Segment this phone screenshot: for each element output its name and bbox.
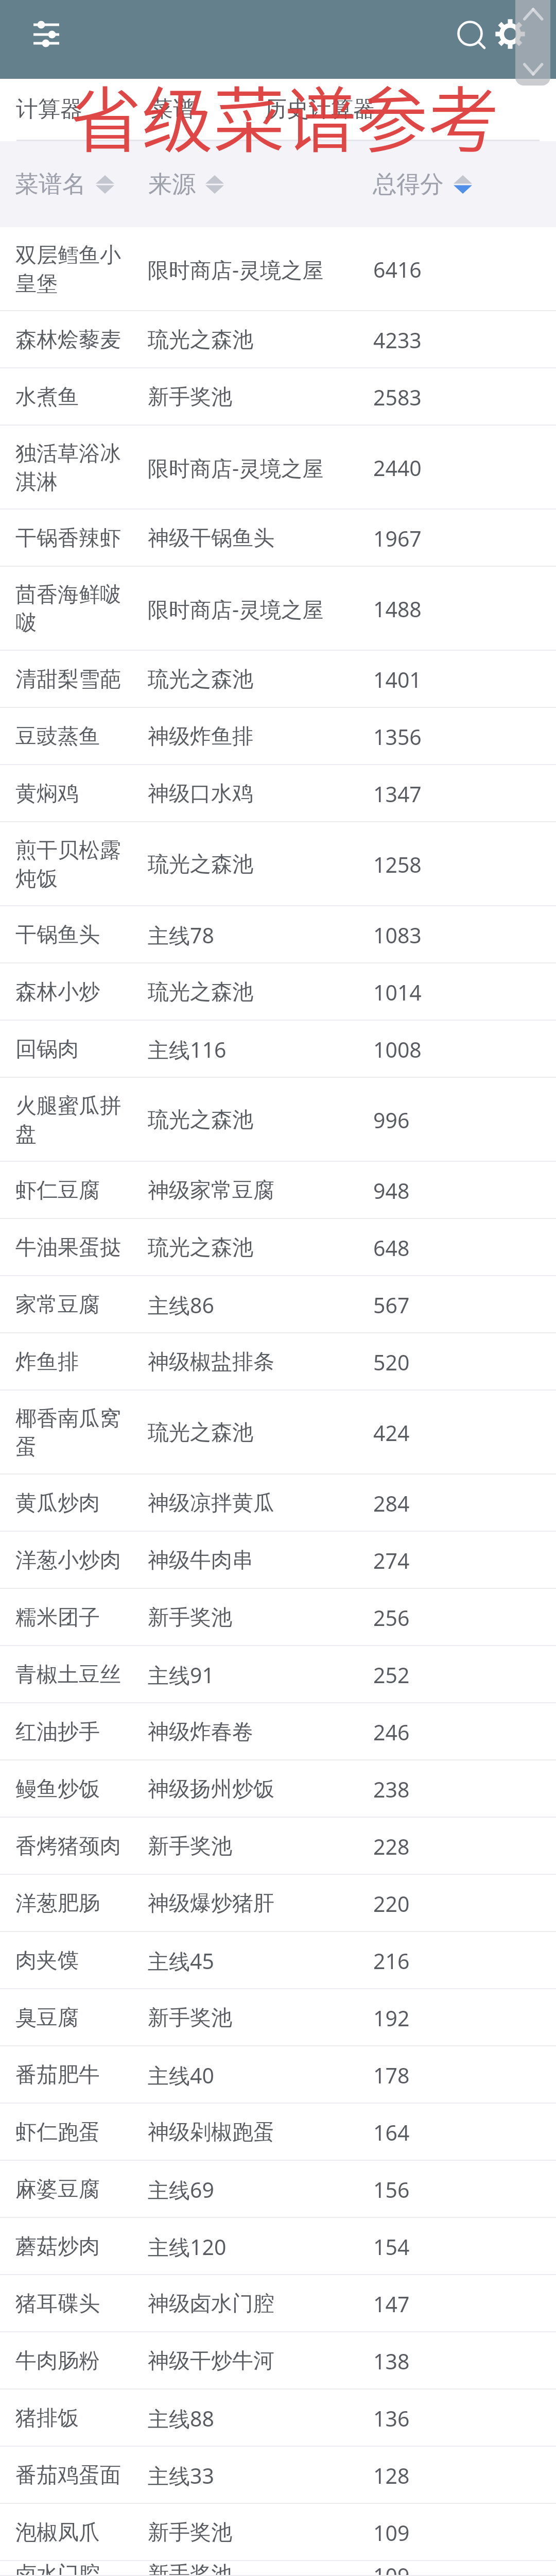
staticText: 炸鱼排 (15, 1349, 79, 1376)
staticText: 总得分 (373, 170, 444, 199)
staticText: 主线45 (148, 1946, 214, 1975)
staticText: 192 (373, 2004, 410, 2032)
staticText: 109 (373, 2561, 410, 2576)
staticText: 豆豉蒸鱼 (15, 723, 100, 750)
staticText: 限时商店-灵境之屋 (148, 595, 324, 623)
button[interactable]: 蘑菇炒肉 (0, 2218, 556, 2275)
staticText: 椰香南瓜窝蛋 (15, 1405, 135, 1460)
button[interactable]: 洋葱肥肠 (0, 1875, 556, 1932)
button[interactable]: 红油抄手 (0, 1703, 556, 1760)
button[interactable]: 回锅肉 (0, 1021, 556, 1078)
staticText: 996 (373, 1106, 410, 1134)
staticText: 948 (373, 1176, 410, 1205)
staticText: 164 (373, 2118, 410, 2147)
button[interactable]: 豆豉蒸鱼 (0, 708, 556, 765)
button[interactable]: 茴香海鲜啵啵 (0, 567, 556, 651)
button[interactable]: 炸鱼排 (0, 1333, 556, 1391)
button[interactable]: 煎干贝松露炖饭 (0, 822, 556, 906)
button[interactable]: 清甜梨雪葩 (0, 651, 556, 708)
button[interactable]: 菜谱 (151, 95, 195, 123)
button[interactable]: 番茄鸡蛋面 (0, 2447, 556, 2504)
button[interactable]: 臭豆腐 (0, 1989, 556, 2046)
staticText: 神级爆炒猪肝 (148, 1890, 274, 1917)
button[interactable]: 独活草浴冰淇淋 (0, 426, 556, 510)
staticText: 糯米团子 (15, 1604, 100, 1631)
staticText: 回锅肉 (15, 1036, 79, 1063)
button[interactable]: 菜谱名 (15, 170, 114, 199)
staticText: 计算器 (16, 95, 82, 123)
staticText: 神级卤水门腔 (148, 2291, 274, 2317)
button[interactable]: 泡椒凤爪 (0, 2504, 556, 2561)
button[interactable]: 洋葱小炒肉 (0, 1532, 556, 1589)
button[interactable]: 水煮鱼 (0, 368, 556, 426)
button[interactable]: 牛肉肠粉 (0, 2332, 556, 2389)
staticText: 神级口水鸡 (148, 781, 253, 807)
staticText: 家常豆腐 (15, 1292, 100, 1318)
staticText: 洋葱小炒肉 (15, 1547, 121, 1574)
staticText: 泡椒凤爪 (15, 2519, 100, 2546)
button[interactable]: Filter (21, 8, 72, 60)
button[interactable]: 猪排饭 (0, 2389, 556, 2447)
button[interactable]: 森林烩藜麦 (0, 311, 556, 368)
button[interactable]: 番茄肥牛 (0, 2046, 556, 2104)
button[interactable]: 虾仁跑蛋 (0, 2104, 556, 2161)
staticText: 神级炸春卷 (148, 1719, 253, 1745)
button[interactable]: 猪耳碟头 (0, 2275, 556, 2332)
button[interactable]: 香烤猪颈肉 (0, 1818, 556, 1875)
staticText: 2440 (373, 453, 422, 482)
staticText: 神级家常豆腐 (148, 1177, 274, 1204)
staticText: 洋葱肥肠 (15, 1890, 100, 1917)
button[interactable]: Settings (484, 8, 536, 60)
button[interactable]: 鳗鱼炒饭 (0, 1760, 556, 1818)
button[interactable]: 双层鳕鱼小皇堡 (0, 227, 556, 311)
button[interactable]: 青椒土豆丝 (0, 1646, 556, 1703)
button[interactable]: 糯米团子 (0, 1589, 556, 1646)
button[interactable]: 森林小炒 (0, 963, 556, 1021)
staticText: 限时商店-灵境之屋 (148, 255, 324, 284)
staticText: 历史计算器 (265, 95, 375, 123)
button[interactable]: 总得分 (373, 170, 472, 199)
staticText: 双层鳕鱼小皇堡 (15, 242, 135, 297)
staticText: 2583 (373, 383, 422, 412)
button[interactable]: 麻婆豆腐 (0, 2161, 556, 2218)
button[interactable]: 黄瓜炒肉 (0, 1475, 556, 1532)
button[interactable]: 计算器 (16, 95, 82, 123)
staticText: 138 (373, 2347, 410, 2376)
button[interactable]: 牛油果蛋挞 (0, 1219, 556, 1276)
button[interactable]: Search (444, 8, 496, 59)
button[interactable]: 干锅香辣虾 (0, 510, 556, 567)
staticText: 主线33 (148, 2461, 214, 2490)
staticText: 156 (373, 2175, 410, 2204)
button[interactable]: 椰香南瓜窝蛋 (0, 1391, 556, 1475)
staticText: 178 (373, 2061, 410, 2090)
staticText: 274 (373, 1546, 410, 1575)
staticText: 茴香海鲜啵啵 (15, 582, 135, 636)
button[interactable]: Scroll to top or bottom (515, 0, 550, 86)
button[interactable]: 虾仁豆腐 (0, 1162, 556, 1219)
staticText: 蘑菇炒肉 (15, 2233, 100, 2260)
staticText: 主线116 (148, 1035, 227, 1064)
staticText: 独活草浴冰淇淋 (15, 440, 135, 495)
staticText: 228 (373, 1832, 410, 1861)
staticText: 虾仁豆腐 (15, 1177, 100, 1204)
staticText: 主线86 (148, 1291, 214, 1319)
staticText: 限时商店-灵境之屋 (148, 453, 324, 482)
staticText: 神级椒盐排条 (148, 1349, 274, 1376)
staticText: 1356 (373, 722, 422, 751)
staticText: 109 (373, 2518, 410, 2547)
staticText: 琉光之森池 (148, 666, 253, 693)
staticText: 番茄肥牛 (15, 2062, 100, 2089)
staticText: 256 (373, 1603, 410, 1632)
button[interactable]: 历史计算器 (265, 95, 375, 123)
button[interactable]: 来源 (148, 170, 224, 199)
button[interactable]: 黄焖鸡 (0, 765, 556, 822)
staticText: 神级凉拌黄瓜 (148, 1490, 274, 1517)
staticText: 主线91 (148, 1660, 214, 1689)
button[interactable]: 家常豆腐 (0, 1276, 556, 1333)
button[interactable]: 干锅鱼头 (0, 906, 556, 963)
staticText: 新手奖池 (148, 2519, 232, 2546)
button[interactable]: 火腿蜜瓜拼盘 (0, 1078, 556, 1162)
button[interactable]: 卤水门腔 (0, 2561, 556, 2576)
button[interactable]: 肉夹馍 (0, 1932, 556, 1989)
staticText: 黄焖鸡 (15, 781, 79, 807)
